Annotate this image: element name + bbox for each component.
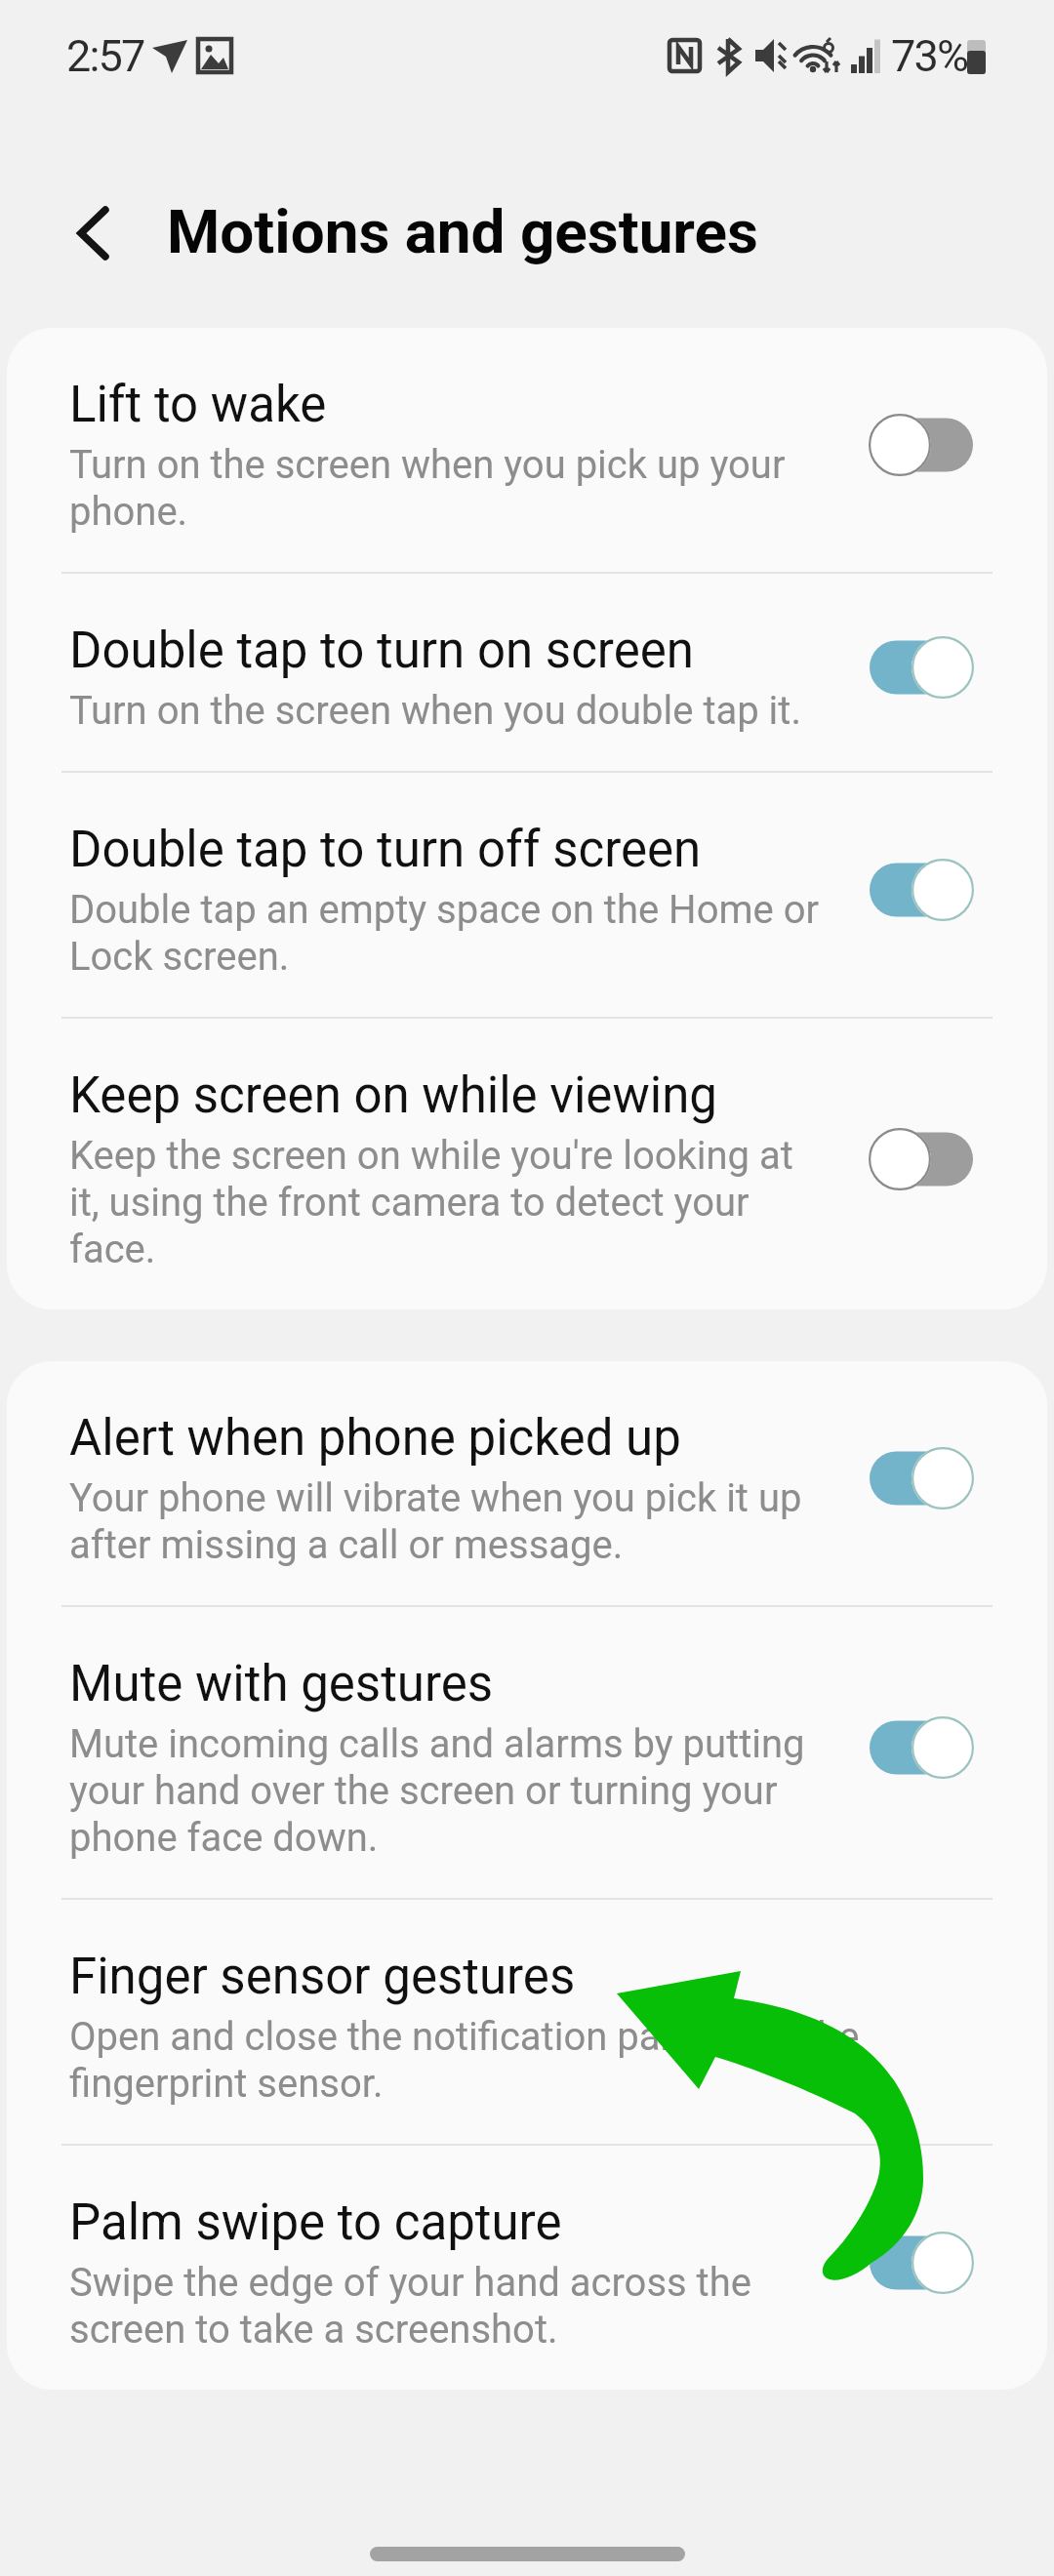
- button[interactable]: Switch on: [857, 839, 986, 941]
- button[interactable]: Double tap to turn on screen: [7, 574, 1047, 771]
- staticText: Swipe the edge of your hand across the s…: [69, 2260, 751, 2353]
- button[interactable]: Alert when phone picked up: [7, 1361, 1047, 1605]
- staticText: Lift to wake: [69, 376, 327, 434]
- staticText: Turn on the screen when you double tap i…: [69, 688, 801, 734]
- staticText: Alert when phone picked up: [69, 1409, 681, 1468]
- button[interactable]: Lift to wake: [7, 328, 1047, 572]
- button[interactable]: Keep screen on while viewing: [7, 1019, 1047, 1309]
- button[interactable]: Switch on: [857, 2212, 986, 2314]
- button[interactable]: Switch on: [857, 1697, 986, 1798]
- button[interactable]: Palm swipe to capture: [7, 2146, 1047, 2390]
- button[interactable]: Switch on: [857, 617, 986, 718]
- staticText: 2:57: [66, 30, 144, 82]
- button[interactable]: Double tap to turn off screen: [7, 773, 1047, 1017]
- button[interactable]: Mute with gestures: [7, 1607, 1047, 1898]
- staticText: Double tap an empty space on the Home or…: [69, 887, 820, 980]
- staticText: Keep screen on while viewing: [69, 1067, 717, 1125]
- staticText: Motions and gestures: [167, 196, 758, 267]
- staticText: 73%: [891, 30, 968, 82]
- staticText: Mute with gestures: [69, 1655, 494, 1713]
- staticText: Double tap to turn on screen: [69, 622, 694, 680]
- button[interactable]: Switch off: [857, 394, 986, 496]
- button[interactable]: Switch on: [857, 1428, 986, 1529]
- staticText: Your phone will vibrate when you pick it…: [69, 1475, 802, 1568]
- staticText: Palm swipe to capture: [69, 2194, 562, 2252]
- button[interactable]: Navigate up: [45, 194, 123, 272]
- staticText: Open and close the notification panel wi…: [69, 2014, 860, 2107]
- staticText: Double tap to turn off screen: [69, 821, 702, 879]
- staticText: Turn on the screen when you pick up your…: [69, 442, 786, 535]
- staticText: Finger sensor gestures: [69, 1948, 576, 2006]
- staticText: Mute incoming calls and alarms by puttin…: [69, 1721, 805, 1861]
- button[interactable]: Switch off: [857, 1108, 986, 1210]
- staticText: Keep the screen on while you're looking …: [69, 1133, 793, 1272]
- button[interactable]: Finger sensor gestures: [7, 1900, 1047, 2144]
